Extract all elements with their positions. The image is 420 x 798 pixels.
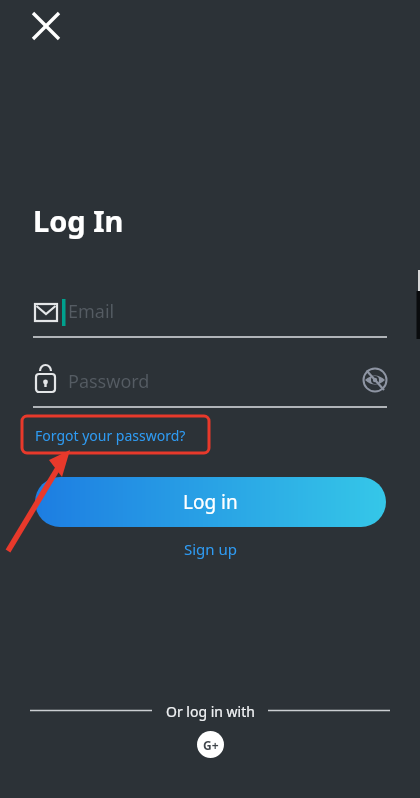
staticText: Log In	[33, 201, 124, 240]
button[interactable]	[22, 2, 70, 50]
button[interactable]: Log in	[35, 477, 386, 527]
button[interactable]: Email	[33, 296, 387, 337]
button[interactable]: Password	[33, 366, 387, 407]
staticText: Or log in with	[166, 702, 255, 721]
button[interactable]	[359, 364, 391, 396]
staticText: Log in	[183, 489, 238, 515]
staticText: Password	[68, 369, 150, 394]
staticText: Email	[68, 299, 115, 324]
button[interactable]: Forgot your password?	[26, 420, 177, 439]
staticText: Forgot your password?	[35, 426, 186, 445]
button[interactable]: G+	[197, 731, 224, 758]
staticText: Sign up	[184, 539, 237, 559]
staticText: G+	[203, 737, 219, 753]
button[interactable]: Sign up	[184, 534, 237, 554]
